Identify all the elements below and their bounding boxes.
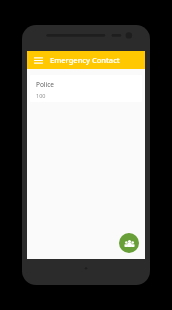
button[interactable]: Open navigation menu (31, 53, 45, 67)
staticText: Emergency Contact (50, 55, 120, 65)
button[interactable]: Add emergency contact (119, 233, 139, 253)
staticText: 100 (36, 92, 46, 99)
staticText: Police (36, 80, 55, 89)
button[interactable]: Police (30, 75, 142, 102)
